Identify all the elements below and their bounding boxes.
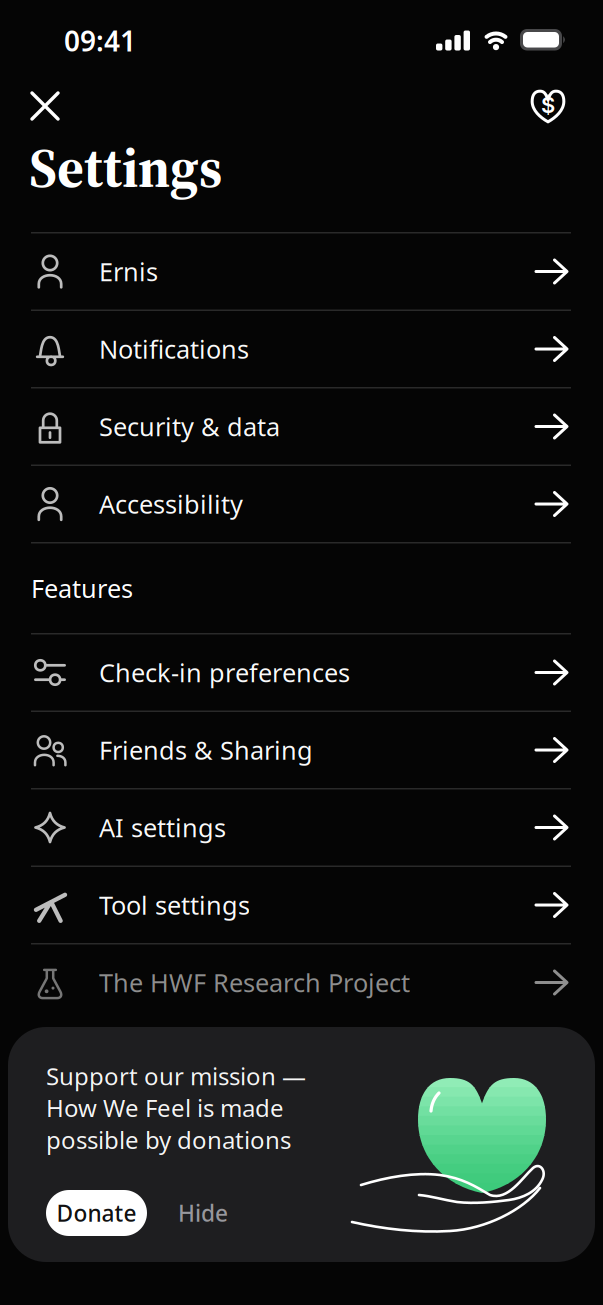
staticText: How We Feel is made (46, 1092, 284, 1124)
button[interactable]: Hide (178, 1190, 228, 1236)
button[interactable]: Check-in preferences (0, 634, 603, 710)
button[interactable]: AI settings (0, 789, 603, 865)
button[interactable]: Friends & Sharing (0, 712, 603, 788)
button[interactable]: Security & data (0, 388, 603, 464)
staticText: Check-in preferences (99, 656, 350, 689)
staticText: Donate (56, 1198, 136, 1228)
button[interactable]: Notifications (0, 311, 603, 387)
staticText: Ernis (99, 255, 158, 288)
button[interactable]: Tool settings (0, 867, 603, 943)
staticText: The HWF Research Project (99, 966, 410, 999)
staticText: Security & data (99, 410, 280, 443)
staticText: Hide (178, 1198, 228, 1228)
staticText: Support our mission — (46, 1060, 306, 1092)
staticText: Accessibility (99, 487, 243, 521)
staticText: Tool settings (99, 888, 250, 922)
staticText: Settings (29, 130, 222, 205)
staticText: AI settings (99, 811, 226, 844)
staticText: Notifications (99, 332, 249, 366)
staticText: 09:41 (64, 22, 136, 59)
button[interactable]: Ernis (0, 233, 603, 309)
button[interactable]: Accessibility (0, 466, 603, 542)
staticText: Features (31, 571, 133, 605)
button[interactable]: Donate (524, 82, 572, 131)
staticText: possible by donations (46, 1124, 291, 1156)
button[interactable]: The HWF Research Project (0, 944, 603, 1020)
button[interactable]: Close (23, 84, 67, 128)
button[interactable]: Donate (46, 1190, 147, 1236)
staticText: Friends & Sharing (99, 733, 313, 767)
staticText: $ (541, 92, 555, 118)
